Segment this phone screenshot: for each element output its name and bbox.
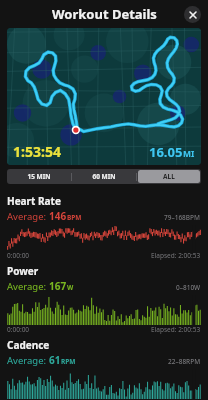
staticText: Heart Rate [7,194,61,208]
button[interactable]: ALL [138,170,200,183]
button[interactable]: Heart Rate [7,190,201,260]
button[interactable]: 1:53:54 [7,28,201,165]
staticText: Average: [7,354,49,367]
button[interactable]: Close [184,6,201,23]
button[interactable]: 15 MIN [8,170,70,183]
staticText: 0:00:00 [7,251,30,260]
staticText: Average: [7,210,49,223]
staticText: 15 MIN [27,172,51,181]
staticText: 1:53:54 [13,142,61,161]
staticText: 167 [49,279,67,293]
staticText: 79–168BPM [164,213,201,222]
staticText: Elapsed: 2:00:53 [151,251,201,260]
staticText: 0:00:00 [7,325,30,334]
staticText: Workout Details [52,5,157,23]
staticText: Average: [7,280,49,293]
staticText: ALL [163,172,175,181]
button[interactable]: 60 MIN [73,170,135,183]
staticText: 16.05 [149,143,183,161]
staticText: Cadence [7,338,50,352]
button[interactable]: Power [7,260,201,334]
staticText: W [67,283,74,292]
staticText: Power [7,264,39,278]
staticText: 146 [49,209,67,223]
staticText: BPM [67,213,82,222]
staticText: 60 MIN [92,172,116,181]
staticText: 22–88RPM [168,357,201,366]
staticText: Elapsed: 2:00:53 [151,325,201,334]
button[interactable]: Cadence [7,334,201,400]
staticText: RPM [61,357,76,366]
staticText: 61 [49,353,61,367]
staticText: MI [183,148,195,160]
staticText: 0–810W [176,283,201,292]
